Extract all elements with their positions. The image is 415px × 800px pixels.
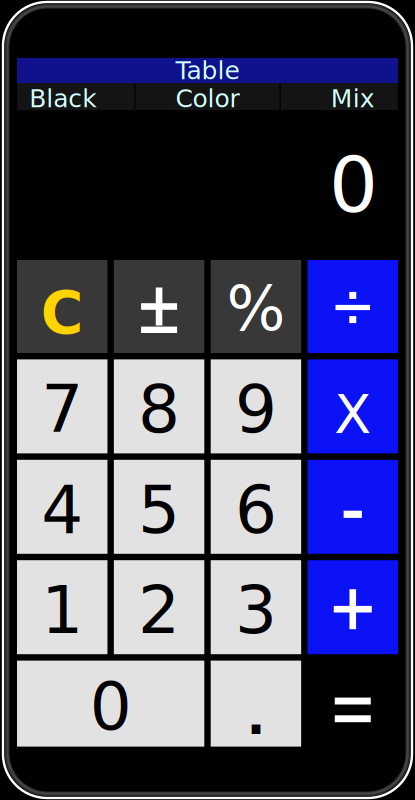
staticText: 5 xyxy=(138,471,180,548)
button[interactable]: Plus xyxy=(308,560,398,654)
staticText: 9 xyxy=(235,371,277,448)
button[interactable]: Black xyxy=(17,83,134,110)
staticText: 7 xyxy=(41,371,83,448)
button[interactable]: 2 xyxy=(114,560,204,654)
button[interactable]: Minus xyxy=(308,460,398,554)
staticText: C xyxy=(41,280,84,347)
staticText: 6 xyxy=(235,471,277,548)
button[interactable]: Multiply xyxy=(308,359,398,453)
button[interactable]: Divide xyxy=(308,260,398,353)
button[interactable]: 5 xyxy=(114,460,204,554)
button[interactable]: 4 xyxy=(17,460,107,554)
staticText: 1 xyxy=(41,572,83,649)
button[interactable]: 3 xyxy=(211,560,301,654)
staticText: X xyxy=(334,383,371,446)
staticText: . xyxy=(246,687,265,746)
button[interactable]: Color xyxy=(135,83,279,110)
staticText: 0 xyxy=(90,668,132,745)
staticText: 3 xyxy=(235,572,277,649)
staticText: Mix xyxy=(331,84,375,113)
staticText: 8 xyxy=(138,371,180,448)
staticText: 4 xyxy=(41,471,83,548)
button[interactable]: 6 xyxy=(211,460,301,554)
staticText: % xyxy=(226,272,285,345)
button[interactable]: 8 xyxy=(114,359,204,453)
button[interactable]: 9 xyxy=(211,359,301,453)
button[interactable]: Percent xyxy=(211,260,301,353)
staticText: 0 xyxy=(329,140,378,230)
staticText: 2 xyxy=(138,572,180,649)
button[interactable]: Decimal point xyxy=(211,661,301,747)
button[interactable]: Mix xyxy=(281,83,398,110)
staticText: Black xyxy=(29,84,96,113)
button[interactable]: 1 xyxy=(17,560,107,654)
button[interactable]: Plus minus xyxy=(114,260,204,353)
button[interactable]: Clear xyxy=(17,260,107,353)
button[interactable]: 0 xyxy=(17,661,204,747)
staticText: Color xyxy=(175,84,239,113)
staticText: Table xyxy=(175,56,239,85)
button[interactable]: Equals xyxy=(308,661,398,747)
button[interactable]: 7 xyxy=(17,359,107,453)
